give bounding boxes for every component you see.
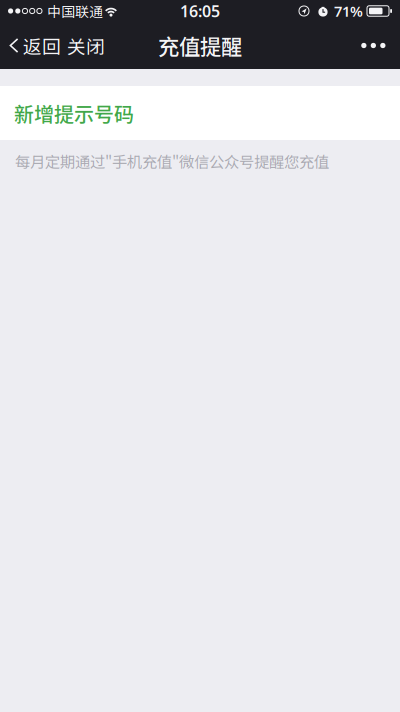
button[interactable]: 返回	[0, 22, 63, 69]
staticText: 71%	[334, 1, 363, 21]
staticText: 中国联通	[47, 1, 103, 21]
staticText: 16:05	[180, 0, 220, 22]
button[interactable]: 新增提示号码	[0, 86, 400, 140]
staticText: 关闭	[67, 32, 105, 59]
staticText: 新增提示号码	[14, 98, 134, 127]
staticText: 每月定期通过"手机充值"微信公众号提醒您充值	[15, 150, 329, 172]
staticText: 充值提醒	[158, 30, 242, 61]
button[interactable]: More options	[347, 22, 400, 69]
staticText: 返回	[23, 32, 61, 59]
button[interactable]: 关闭	[63, 22, 109, 69]
